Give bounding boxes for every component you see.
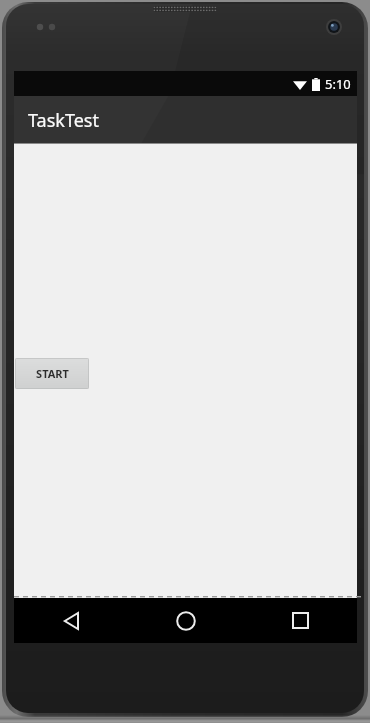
button[interactable]: Home	[129, 598, 243, 643]
staticText: TaskTest	[28, 108, 99, 133]
button[interactable]: Recent apps	[243, 598, 357, 643]
staticText: 5:10	[325, 75, 351, 93]
staticText: START	[36, 366, 69, 381]
button[interactable]: START	[15, 358, 89, 389]
button[interactable]: Back	[14, 598, 129, 643]
